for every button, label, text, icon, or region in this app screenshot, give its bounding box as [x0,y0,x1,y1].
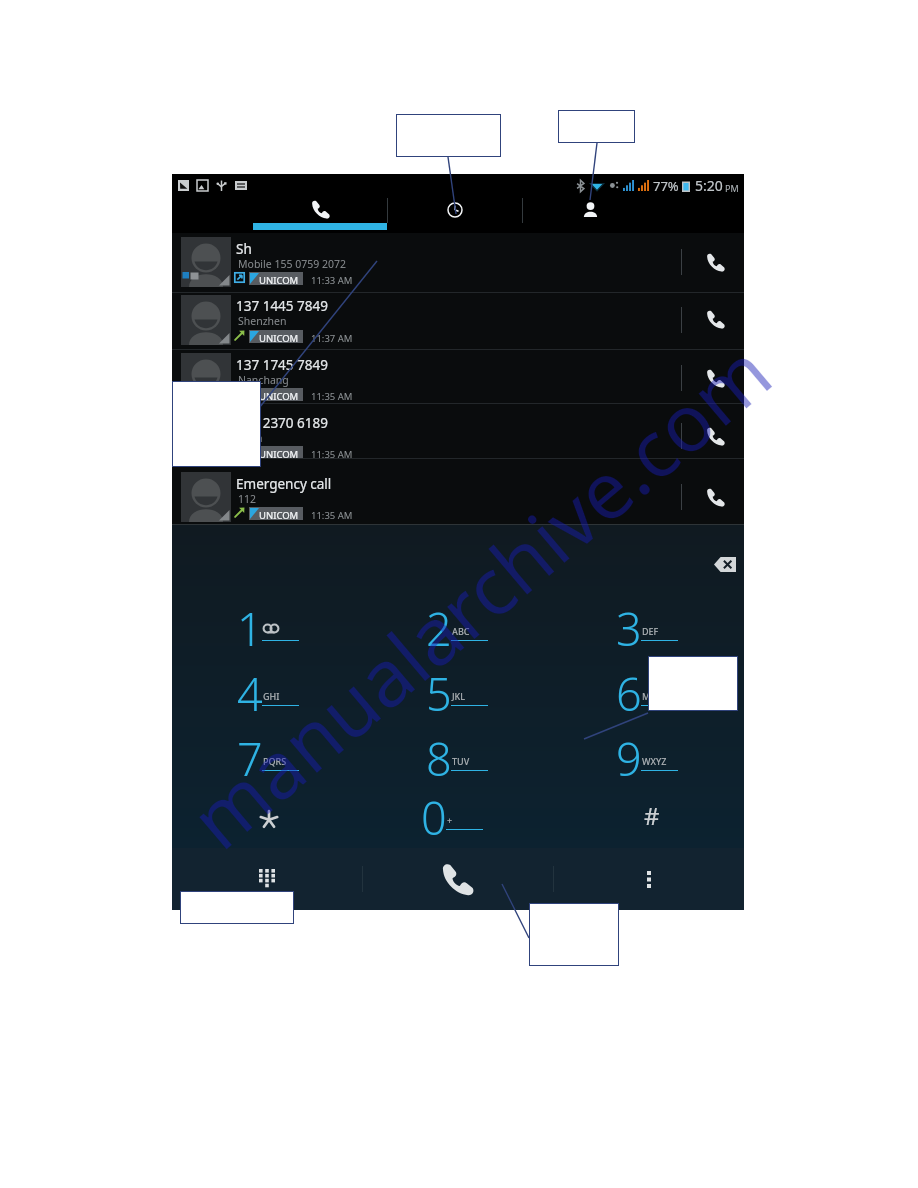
button[interactable]: Key 5 [414,657,500,715]
staticText: 9 [616,728,642,786]
staticText: UNICOM [259,390,299,403]
staticText: PM [725,182,739,194]
staticText: 6 [616,663,642,721]
staticText: Nanchang [238,373,289,387]
button[interactable]: Call 137 1745 7849 [687,351,744,405]
staticText: 11:35 AM [311,509,353,522]
staticText: 11:37 AM [311,332,353,345]
button[interactable]: Key star [251,801,287,837]
staticText: 135 2370 6189 [236,414,328,432]
staticText: PQRS [263,755,287,767]
button[interactable]: Contacts tab [523,196,657,233]
staticText: ABC [452,625,470,637]
button[interactable]: Sh [172,233,744,293]
button[interactable]: Call [362,848,553,910]
button[interactable]: Key 0 [409,781,495,839]
staticText: 2 [426,598,452,656]
button[interactable]: 137 1445 7849 [172,293,744,350]
staticText: 1 [237,598,263,656]
staticText: 3 [616,598,642,656]
staticText: GHI [263,690,280,702]
staticText: 77% [653,177,679,195]
button[interactable]: Dialpad [172,848,362,910]
staticText: 11:33 AM [311,274,353,287]
staticText: + [447,814,453,826]
button[interactable]: Key hash [634,797,670,833]
button[interactable]: Dialer tab [253,196,387,233]
staticText: 0 [421,787,447,845]
button[interactable]: Key 9 [604,722,690,780]
staticText: UNICOM [259,448,299,461]
staticText: TUV [452,755,470,767]
button[interactable]: Key 4 [225,657,311,715]
button[interactable]: Key 2 [414,592,500,650]
staticText: 137 1445 7849 [236,297,328,315]
button[interactable]: 137 1745 7849 [172,350,744,404]
button[interactable]: Call log tab [388,196,522,233]
staticText: DEF [642,625,659,637]
button[interactable]: More options [553,848,744,910]
button[interactable]: 135 2370 6189 [172,404,744,459]
button[interactable]: Key 6 [604,657,690,715]
button[interactable]: Emergency call [172,459,744,526]
staticText: UNICOM [259,274,299,287]
button[interactable]: Key 1 [225,592,311,650]
staticText: 5 [426,663,452,721]
staticText: 5:20 [695,176,723,195]
staticText: 8 [426,728,452,786]
staticText: 112 [238,492,257,506]
staticText: 11:35 AM [311,390,353,403]
staticText: 7 [237,728,263,786]
button[interactable]: Backspace [714,557,736,572]
staticText: UNICOM [259,332,299,345]
button[interactable]: Key 7 [225,722,311,780]
staticText: UNICOM [259,509,299,522]
staticText: 137 1745 7849 [236,356,328,374]
staticText: Sh [236,240,252,258]
staticText: # [644,799,660,832]
staticText: Shenzhen [238,314,287,328]
button[interactable]: Call Emergency call [687,464,744,531]
staticText: 4 [237,663,263,721]
staticText: JKL [452,690,466,702]
staticText: WXYZ [642,755,667,767]
staticText: Jinan [238,431,263,445]
staticText: Emergency call [236,475,332,493]
button[interactable]: Call 135 2370 6189 [687,409,744,464]
staticText: manualarchive.com [167,318,793,872]
button[interactable]: Key 8 [414,722,500,780]
button[interactable]: Call 137 1445 7849 [687,291,744,348]
button[interactable]: Call Sh [687,232,744,292]
staticText: 11:35 AM [311,448,353,461]
button[interactable]: Key 3 [604,592,690,650]
staticText: MNO [642,690,665,702]
staticText: Mobile 155 0759 2072 [238,257,346,271]
